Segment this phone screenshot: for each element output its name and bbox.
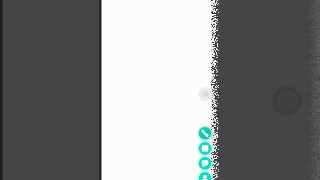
button[interactable]: Video call [199, 142, 212, 155]
button[interactable]: Contact [199, 172, 212, 180]
button[interactable]: Call [199, 127, 212, 140]
button[interactable]: More options [199, 87, 214, 102]
button[interactable]: Message [199, 157, 212, 170]
